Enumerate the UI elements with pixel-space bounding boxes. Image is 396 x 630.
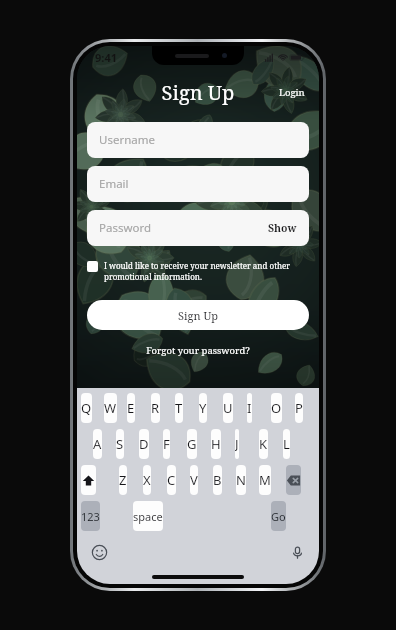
staticText: Email [99, 176, 129, 192]
staticText: J [235, 435, 239, 453]
button[interactable]: M [259, 465, 271, 495]
button[interactable]: Z [119, 465, 127, 495]
staticText: Login [279, 86, 305, 99]
staticText: Go [271, 509, 286, 524]
staticText: P [295, 399, 303, 417]
button[interactable]: V [190, 465, 198, 495]
button[interactable]: 123 [81, 501, 100, 531]
staticText: Forgot your password? [87, 344, 309, 357]
button[interactable]: Sign Up [87, 300, 309, 330]
staticText: Sign Up [77, 79, 319, 106]
button[interactable]: Login [275, 82, 309, 103]
staticText: V [190, 471, 198, 489]
button[interactable]: Shift [81, 465, 96, 495]
button[interactable]: J [235, 429, 239, 459]
staticText: I would like to receive your newsletter … [104, 260, 309, 282]
button[interactable]: Go [271, 501, 286, 531]
button[interactable]: R [151, 393, 160, 423]
button[interactable]: Q [81, 393, 92, 423]
staticText: space [133, 509, 163, 524]
staticText: U [223, 399, 233, 417]
button[interactable]: B [213, 465, 222, 495]
button[interactable]: D [139, 429, 149, 459]
button[interactable]: W [104, 393, 117, 423]
staticText: S [116, 435, 124, 453]
staticText: Username [99, 132, 155, 148]
button[interactable]: O [271, 393, 282, 423]
staticText: E [127, 399, 135, 417]
staticText: X [143, 471, 151, 489]
staticText: Sign Up [178, 308, 219, 323]
staticText: R [151, 399, 160, 417]
button[interactable]: Email [87, 166, 309, 202]
staticText: N [236, 471, 246, 489]
button[interactable]: S [116, 429, 124, 459]
staticText: W [104, 399, 117, 417]
staticText: A [93, 435, 102, 453]
button[interactable]: I would like to receive your newsletter … [87, 260, 309, 282]
staticText: L [283, 435, 290, 453]
staticText: M [259, 471, 271, 489]
staticText: Q [81, 399, 92, 417]
button[interactable]: Show [268, 221, 297, 235]
button[interactable]: E [127, 393, 135, 423]
staticText: F [163, 435, 170, 453]
button[interactable]: Dictation [287, 542, 307, 562]
button[interactable]: C [167, 465, 176, 495]
button[interactable]: Backspace [286, 465, 301, 495]
button[interactable]: P [295, 393, 303, 423]
staticText: 123 [81, 509, 100, 524]
staticText: Show [268, 221, 297, 235]
button[interactable]: L [283, 429, 290, 459]
button[interactable]: A [93, 429, 102, 459]
button[interactable]: N [236, 465, 246, 495]
staticText: I [247, 399, 252, 417]
staticText: O [271, 399, 282, 417]
staticText: T [175, 399, 183, 417]
button[interactable]: Forgot your password? [87, 344, 309, 357]
button[interactable]: K [259, 429, 268, 459]
button[interactable]: X [143, 465, 151, 495]
staticText: B [213, 471, 222, 489]
staticText: 9:41 [95, 50, 117, 65]
button[interactable]: Password [87, 210, 309, 246]
staticText: G [187, 435, 197, 453]
button[interactable]: I [247, 393, 252, 423]
button[interactable]: space [133, 501, 163, 531]
button[interactable]: G [187, 429, 197, 459]
staticText: Y [199, 399, 207, 417]
staticText: C [167, 471, 176, 489]
staticText: H [211, 435, 221, 453]
staticText: Z [119, 471, 127, 489]
staticText: D [139, 435, 149, 453]
staticText: Password [99, 220, 152, 236]
button[interactable]: Emoji [89, 542, 109, 562]
button[interactable]: Y [199, 393, 207, 423]
button[interactable]: T [175, 393, 183, 423]
button[interactable]: U [223, 393, 233, 423]
button[interactable]: Username [87, 122, 309, 158]
staticText: K [259, 435, 268, 453]
button[interactable]: H [211, 429, 221, 459]
button[interactable]: F [163, 429, 170, 459]
